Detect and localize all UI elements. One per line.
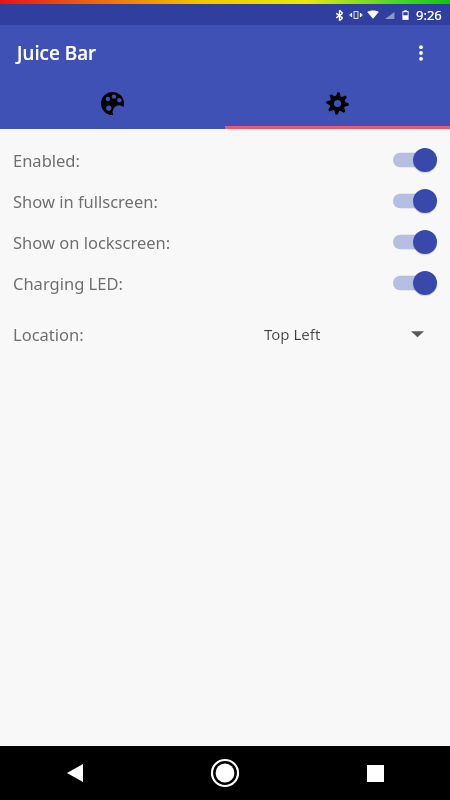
- button[interactable]: More options: [401, 33, 441, 73]
- button[interactable]: Enabled:: [0, 139, 450, 180]
- staticText: Location:: [13, 323, 84, 345]
- button[interactable]: Recent apps: [300, 746, 450, 800]
- button[interactable]: Appearance tab: [0, 81, 225, 129]
- button[interactable]: Show on lockscreen:: [0, 221, 450, 262]
- button[interactable]: Home: [150, 746, 300, 800]
- button[interactable]: Charging LED:: [0, 262, 450, 303]
- button[interactable]: Show in fullscreen:: [0, 180, 450, 221]
- button[interactable]: Settings tab: [225, 81, 450, 129]
- button[interactable]: Location:: [0, 313, 450, 354]
- button[interactable]: Back: [0, 746, 150, 800]
- staticText: Charging LED:: [13, 272, 123, 294]
- other: Open location dropdown: [411, 330, 424, 338]
- staticText: Juice Bar: [17, 40, 97, 66]
- staticText: Show on lockscreen:: [13, 231, 171, 253]
- staticText: 9:26: [416, 6, 442, 24]
- staticText: Top Left: [264, 324, 321, 344]
- staticText: Enabled:: [13, 149, 80, 171]
- staticText: Show in fullscreen:: [13, 190, 158, 212]
